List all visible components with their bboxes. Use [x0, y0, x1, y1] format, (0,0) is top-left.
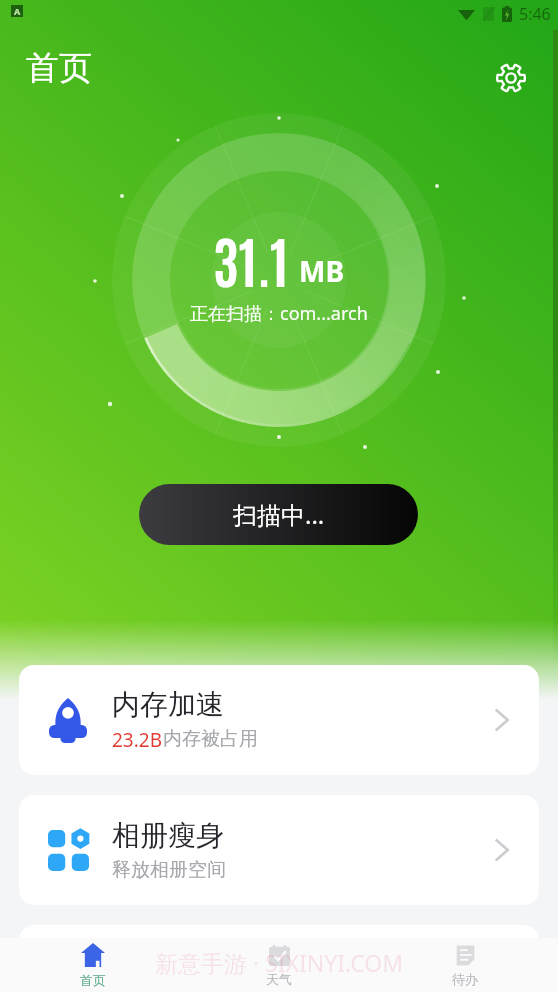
staticText: 首页 [80, 972, 106, 988]
staticText: 5:46 [519, 3, 551, 25]
button[interactable]: 微信清理 [19, 925, 539, 992]
staticText: 待办 [452, 971, 478, 987]
button[interactable]: 内存加速 [19, 665, 539, 775]
staticText: 相册瘦身 [112, 818, 224, 853]
staticText: 天气 [266, 971, 292, 987]
button[interactable]: 扫描中... [139, 484, 418, 545]
staticText: 正在扫描：com...arch [190, 301, 368, 326]
staticText: 释放相册空间 [112, 858, 226, 882]
button[interactable]: 首页 [0, 938, 186, 992]
staticText: 内存被占用 [163, 727, 258, 751]
button[interactable]: 相册瘦身 [19, 795, 539, 905]
staticText: 内存加速 [112, 687, 224, 722]
staticText: 首页 [26, 47, 92, 89]
staticText: 扫描中... [233, 498, 325, 531]
staticText: 微信清理 [112, 948, 224, 983]
staticText: A [14, 5, 21, 17]
staticText: 31.1 [213, 223, 289, 294]
button[interactable]: 天气 [186, 938, 372, 992]
staticText: 新意手游 · SIXINYI.COM [155, 947, 404, 978]
staticText: 23.2B [112, 727, 163, 753]
button[interactable]: Settings [485, 52, 537, 104]
button[interactable]: 待办 [372, 938, 558, 992]
staticText: MB [299, 252, 345, 290]
